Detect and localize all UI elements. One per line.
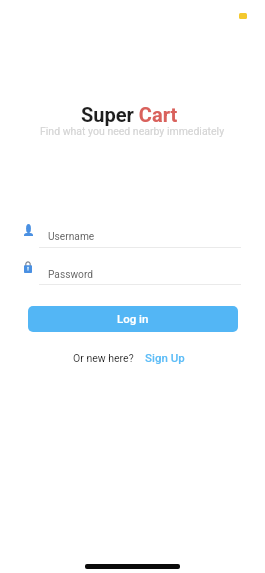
other: Username xyxy=(24,224,33,236)
button[interactable]: Username xyxy=(0,222,265,252)
button[interactable]: Password xyxy=(0,260,265,290)
button[interactable]: Sign Up xyxy=(145,351,185,364)
button[interactable]: Log in xyxy=(28,306,238,332)
staticText: Password xyxy=(48,269,93,281)
other: Password xyxy=(24,261,32,273)
staticText: Username xyxy=(48,231,95,243)
staticText: Or new here? xyxy=(73,352,134,364)
staticText: Super Cart xyxy=(81,103,178,126)
other: Battery xyxy=(239,13,247,19)
staticText: Log in xyxy=(117,312,149,325)
staticText: Find what you need nearby immediately xyxy=(40,125,225,137)
staticText: Sign Up xyxy=(145,351,185,364)
